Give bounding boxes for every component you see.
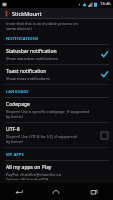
staticText: Show toast notifications: [6, 76, 50, 81]
staticText: All my apps on Play: [6, 164, 52, 171]
button[interactable]: UTF-8: [0, 123, 113, 148]
staticText: MY APPS: [6, 152, 24, 158]
staticText: (Expert) Use a specific codepage, if sup…: [6, 109, 90, 119]
staticText: 16:46: [100, 1, 111, 7]
staticText: (Expert) Use UTF-8 for I/O, if supported…: [6, 134, 77, 144]
staticText: Toast notification: [6, 68, 47, 75]
button[interactable]: Codepage: [0, 98, 113, 123]
staticText: Codepage: [6, 101, 30, 108]
staticText: Statusbar notification: [6, 48, 57, 55]
staticText: LANGUAGE: [6, 89, 29, 95]
button[interactable]: Home: [37, 183, 75, 200]
staticText: (note that this is an invisible process …: [6, 21, 78, 31]
staticText: NOTIFICATIONS: [6, 36, 39, 42]
button[interactable]: Back: [0, 183, 37, 200]
button[interactable]: Toast notification: [0, 65, 113, 85]
staticText: Show statusbar notifications: [6, 56, 58, 61]
button[interactable]: Statusbar notification: [0, 45, 113, 65]
staticText: UTF-8: [6, 126, 20, 133]
staticText: PayPal: chainfire@chainfire.eu Twitter: …: [6, 172, 62, 180]
button[interactable]: All my apps on Play: [0, 161, 113, 183]
button[interactable]: Recent apps: [75, 183, 113, 200]
staticText: StickMount: [12, 10, 42, 18]
